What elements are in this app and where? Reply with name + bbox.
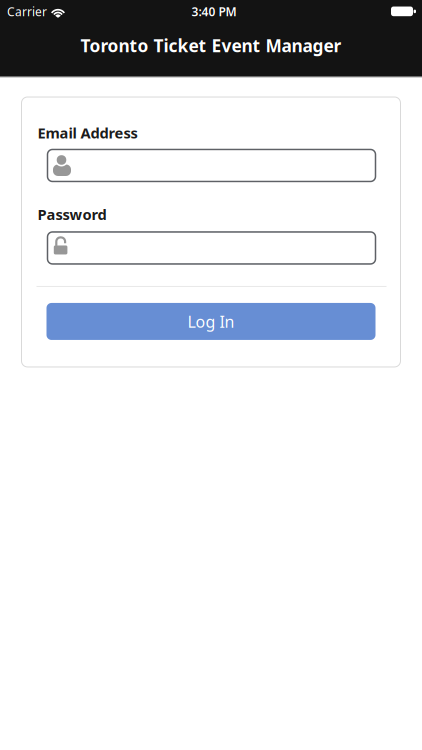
button[interactable]: Email Address <box>47 149 375 181</box>
button[interactable]: Log In <box>46 303 375 340</box>
staticText: 3:40 PM <box>191 3 236 19</box>
staticText: Log In <box>187 311 234 332</box>
button[interactable]: Password <box>47 232 375 264</box>
staticText: Carrier <box>7 3 47 19</box>
staticText: Password <box>37 204 106 224</box>
staticText: Email Address <box>37 123 137 142</box>
staticText: Toronto Ticket Event Manager <box>80 34 341 57</box>
